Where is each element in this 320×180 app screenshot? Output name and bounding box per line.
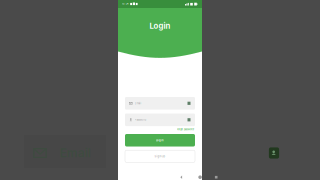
button[interactable]: Recents: [215, 176, 217, 178]
button[interactable]: Sign Up: [125, 150, 195, 162]
staticText: Login: [156, 139, 164, 142]
staticText: 10:24: [122, 2, 129, 5]
button[interactable]: Back: [180, 175, 182, 179]
staticText: Email: [60, 146, 91, 160]
button[interactable]: Forgot password?: [177, 128, 194, 131]
button[interactable]: Login: [125, 134, 195, 146]
button[interactable]: App: [0, 0, 320, 180]
button[interactable]: Home: [198, 175, 202, 179]
staticText: Email: [135, 102, 142, 105]
staticText: Sign Up: [154, 155, 165, 158]
staticText: Login: [149, 21, 170, 31]
button[interactable]: Email: [0, 0, 320, 180]
staticText: Forgot password?: [177, 128, 194, 131]
staticText: Password: [135, 118, 147, 121]
